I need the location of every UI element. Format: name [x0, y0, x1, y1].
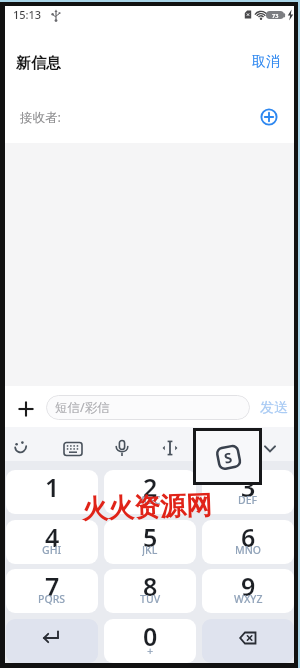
staticText: 接收者:: [20, 109, 61, 126]
button[interactable]: 9: [202, 569, 294, 613]
staticText: GHI: [42, 543, 62, 556]
button[interactable]: 7: [6, 569, 98, 613]
button[interactable]: [258, 437, 282, 461]
staticText: 3: [241, 470, 256, 499]
staticText: 新信息: [16, 54, 61, 70]
staticText: 0: [143, 619, 158, 647]
button[interactable]: 取消: [246, 53, 286, 69]
staticText: 5: [143, 520, 158, 549]
button[interactable]: 2: [104, 470, 196, 514]
button[interactable]: [9, 437, 33, 461]
button[interactable]: 6: [202, 520, 294, 564]
staticText: 8: [143, 569, 158, 598]
staticText: 2: [143, 470, 158, 499]
button[interactable]: 8: [104, 569, 196, 613]
staticText: ABC: [140, 493, 161, 506]
staticText: DEF: [238, 493, 258, 506]
staticText: 1: [45, 470, 60, 499]
button[interactable]: [158, 437, 182, 461]
staticText: MNO: [235, 543, 262, 556]
staticText: 4: [45, 520, 60, 549]
staticText: 6: [241, 520, 256, 549]
staticText: JKL: [142, 543, 158, 556]
staticText: +: [147, 643, 154, 656]
staticText: TUV: [140, 592, 161, 605]
staticText: 9: [241, 569, 256, 598]
button[interactable]: [18, 401, 34, 417]
button[interactable]: [202, 619, 294, 663]
staticText: S: [222, 447, 234, 468]
staticText: 73: [272, 12, 279, 19]
button[interactable]: [110, 437, 134, 461]
button[interactable]: 4: [6, 520, 98, 564]
button[interactable]: 发送: [254, 397, 294, 418]
button[interactable]: 短信/彩信: [46, 395, 250, 420]
staticText: 短信/彩信: [55, 399, 110, 416]
staticText: 7: [45, 569, 60, 598]
staticText: 15:13: [13, 7, 42, 22]
button[interactable]: [260, 108, 278, 126]
button[interactable]: 1: [6, 470, 98, 514]
staticText: 发送: [260, 399, 288, 417]
button[interactable]: [6, 619, 98, 663]
staticText: PQRS: [38, 592, 66, 605]
staticText: 取消: [252, 53, 280, 69]
button[interactable]: 5: [104, 520, 196, 564]
button[interactable]: [61, 437, 85, 461]
button[interactable]: S: [193, 428, 262, 485]
button[interactable]: 3: [202, 470, 294, 514]
button[interactable]: 0: [104, 619, 196, 663]
staticText: 火火资源网: [81, 489, 213, 526]
staticText: WXYZ: [234, 592, 263, 605]
